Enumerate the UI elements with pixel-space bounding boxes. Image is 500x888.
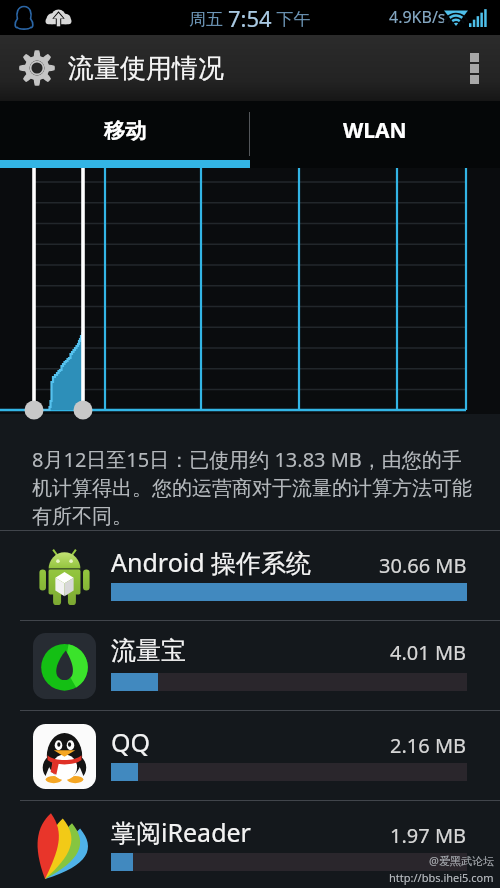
staticText: 周五 — [189, 7, 228, 30]
button[interactable]: QQ — [0, 711, 500, 800]
staticText: QQ — [111, 725, 151, 759]
staticText: 掌阅iReader — [111, 815, 251, 849]
staticText: 4.9KB/s — [389, 6, 446, 28]
staticText: http://bbs.ihei5.com — [389, 870, 494, 885]
staticText: 1.97 MB — [390, 822, 467, 849]
staticText: @爱黑武论坛 — [429, 853, 494, 868]
staticText: 30.66 MB — [379, 552, 467, 579]
staticText: 移动 — [104, 118, 146, 144]
staticText: Android 操作系统 — [111, 545, 312, 579]
staticText: WLAN — [343, 116, 407, 145]
staticText: 下午 — [272, 7, 311, 30]
button[interactable]: Android 操作系统 — [0, 531, 500, 620]
staticText: 流量宝 — [111, 635, 186, 666]
button[interactable]: 移动 — [0, 101, 250, 160]
button[interactable]: WLAN — [250, 101, 500, 160]
staticText: 7:54 — [228, 3, 272, 33]
button[interactable]: 掌阅iReader — [0, 801, 500, 888]
staticText: 8月12日至15日：已使用约 13.83 MB，由您的手机计算得出。您的运营商对… — [32, 446, 472, 529]
button[interactable]: More options — [448, 35, 500, 101]
staticText: 流量使用情况 — [68, 52, 224, 85]
button[interactable]: 流量使用情况 — [0, 35, 500, 101]
staticText: 4.01 MB — [390, 639, 467, 666]
button[interactable]: 流量宝 — [0, 621, 500, 710]
staticText: 2.16 MB — [390, 732, 467, 759]
